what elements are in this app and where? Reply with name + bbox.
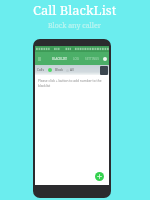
button[interactable]: Add number [95, 172, 104, 181]
staticText: Please click + button to add number to t… [38, 79, 106, 88]
button[interactable]: SETTINGS [85, 57, 99, 61]
staticText: SETTINGS [85, 57, 99, 61]
staticText: Block any caller [48, 21, 102, 31]
button[interactable]: LOG [73, 57, 80, 61]
button[interactable]: BLACKLIST [52, 57, 68, 61]
staticText: Call BlackList [33, 1, 117, 19]
button[interactable]: More options [100, 66, 108, 75]
staticText: LOG [73, 57, 80, 61]
staticText: BLACKLIST [52, 57, 68, 61]
staticText: Calls [37, 68, 44, 72]
staticText: All [70, 68, 74, 72]
button[interactable]: Account [103, 57, 107, 61]
staticText: Block [55, 68, 64, 72]
